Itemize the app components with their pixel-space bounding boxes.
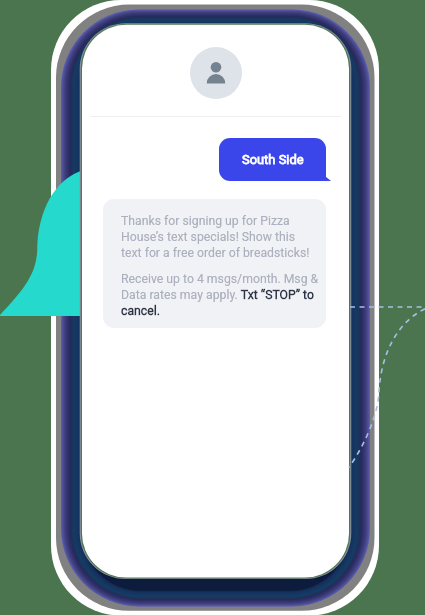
button[interactable]: South Side <box>219 138 326 181</box>
staticText: South Side <box>242 152 304 167</box>
button[interactable]: Contact avatar <box>190 47 242 99</box>
button[interactable]: Thanks for signing up for Pizza House’s … <box>103 199 326 328</box>
staticText: Thanks for signing up for Pizza House’s … <box>121 214 310 260</box>
staticText: Receive up to 4 msgs/month. Msg & Data r… <box>121 272 319 318</box>
